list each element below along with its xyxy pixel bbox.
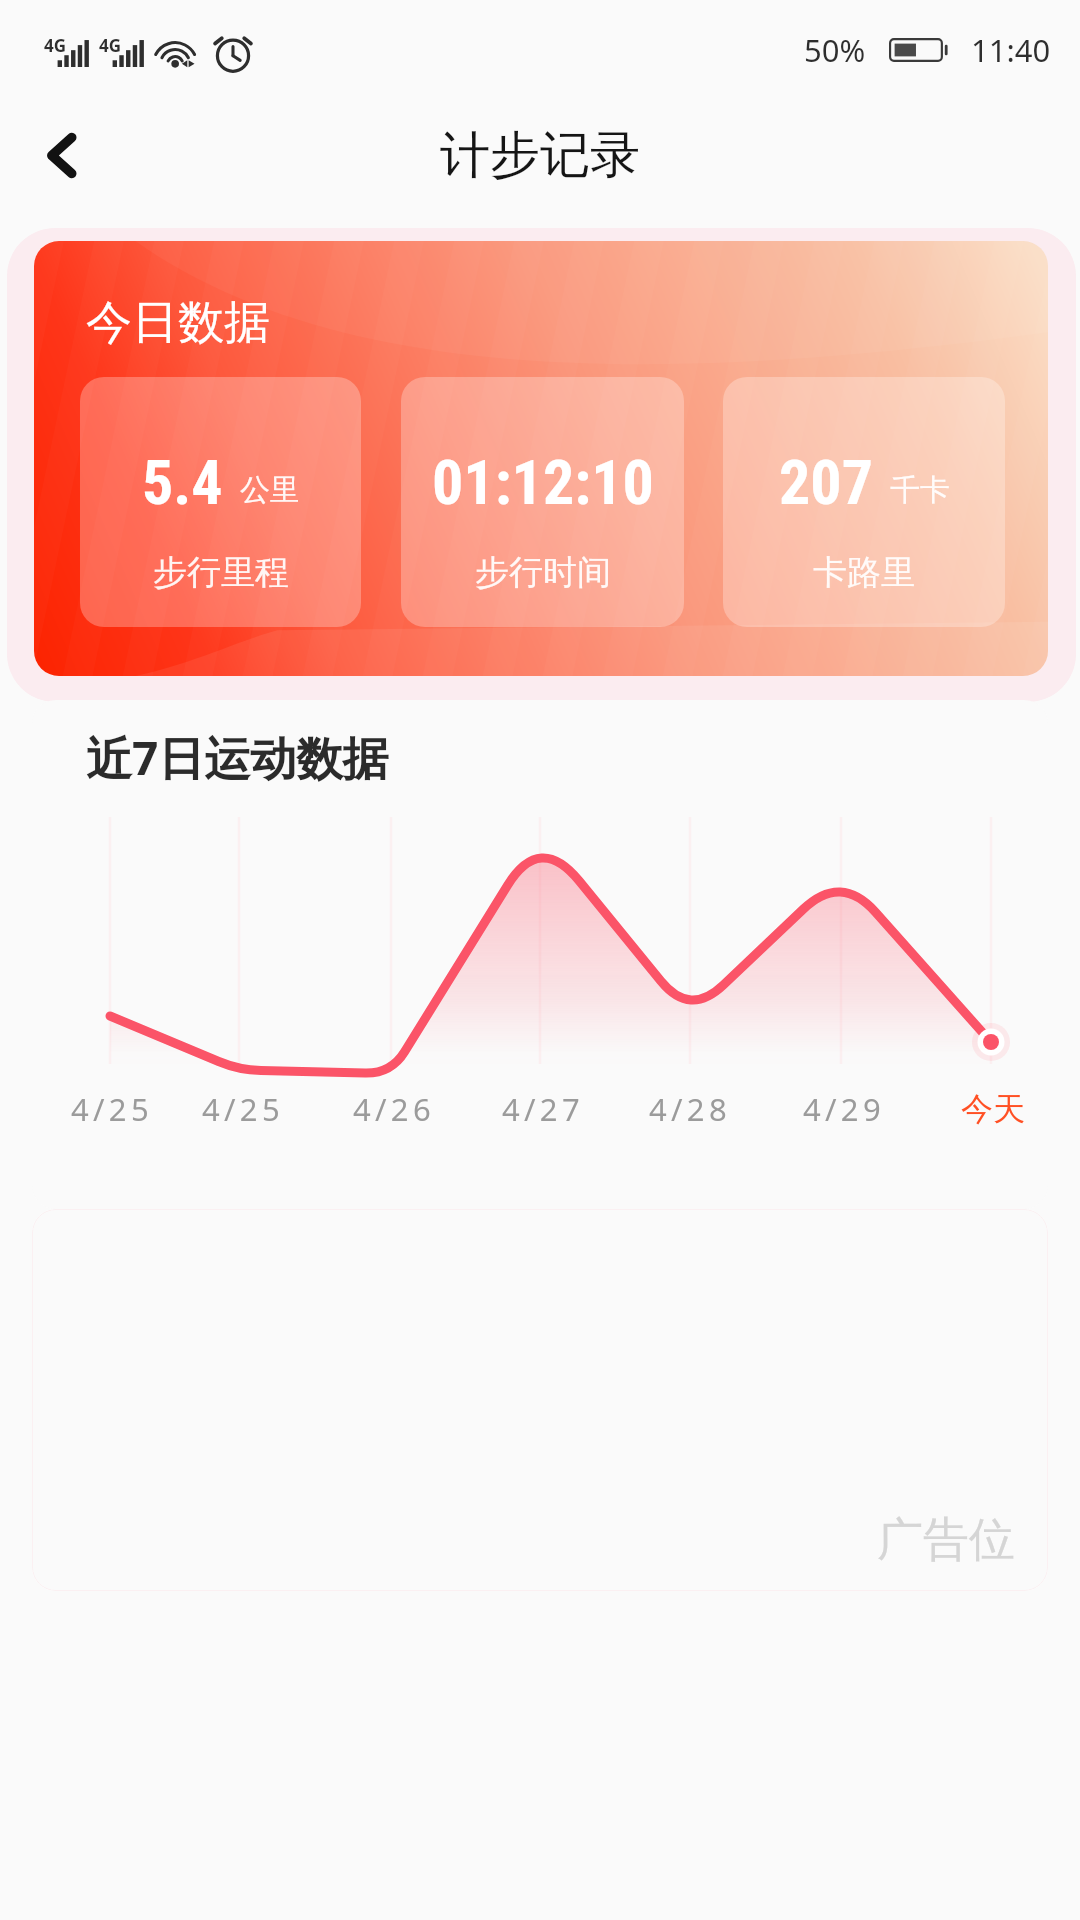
staticText: 50%: [804, 29, 866, 71]
staticText: 4/26: [353, 1088, 435, 1130]
staticText: 4/29: [803, 1088, 885, 1130]
staticText: 广告位: [877, 1511, 1015, 1569]
staticText: 01:12:10: [432, 446, 654, 519]
staticText: 近7日运动数据: [86, 726, 389, 789]
staticText: 卡路里: [813, 551, 915, 594]
staticText: 4G: [44, 34, 67, 57]
staticText: 计步记录: [440, 124, 640, 187]
staticText: 4G: [99, 34, 122, 57]
staticText: 4/25: [71, 1088, 153, 1130]
staticText: 今天: [961, 1089, 1025, 1129]
staticText: 公里: [240, 471, 300, 509]
staticText: 207: [779, 446, 873, 519]
staticText: 步行里程: [153, 551, 289, 594]
staticText: 千卡: [890, 471, 950, 509]
button[interactable]: Back: [18, 112, 104, 198]
button[interactable]: 5.4: [80, 377, 361, 627]
button[interactable]: 01:12:10: [401, 377, 684, 627]
staticText: 4/27: [502, 1088, 584, 1130]
staticText: 5.4: [142, 446, 223, 519]
button[interactable]: 207: [723, 377, 1005, 627]
staticText: 今日数据: [86, 294, 270, 352]
staticText: 4/25: [202, 1088, 284, 1130]
button[interactable]: 今日数据: [34, 241, 1048, 676]
staticText: 步行时间: [475, 551, 611, 594]
staticText: 4/28: [649, 1088, 731, 1130]
staticText: 11:40: [971, 29, 1051, 71]
